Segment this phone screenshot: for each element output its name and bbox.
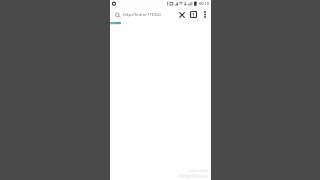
button[interactable]: More options — [199, 9, 210, 20]
button[interactable]: Stop loading — [177, 9, 188, 20]
button[interactable]: Switch tabs, 1 open tab — [188, 9, 199, 20]
staticText: made with — [188, 168, 209, 174]
staticText: 1 — [192, 12, 195, 18]
staticText: http://link.it/1TDGQ — [123, 12, 161, 18]
staticText: 00:10 — [199, 1, 209, 6]
staticText: VideoShow — [178, 172, 209, 180]
button[interactable]: http://link.it/1TDGQ — [110, 9, 174, 22]
